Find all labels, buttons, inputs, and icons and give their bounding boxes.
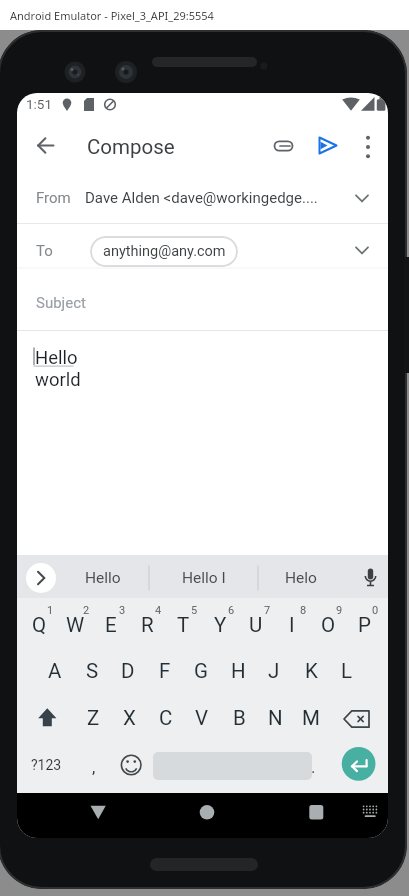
staticText: ?123 xyxy=(31,757,62,773)
staticText: anything@any.com xyxy=(103,243,226,260)
button[interactable]: Z xyxy=(76,703,110,733)
staticText: I xyxy=(289,613,295,637)
staticText: Helo xyxy=(285,569,317,587)
staticText: K xyxy=(305,659,318,683)
button[interactable]: W xyxy=(58,610,92,640)
button[interactable]: Y xyxy=(203,610,237,640)
staticText: S xyxy=(86,659,99,683)
button[interactable]: L xyxy=(330,656,364,686)
button[interactable]: anything@any.com xyxy=(90,236,238,267)
staticText: 9 xyxy=(336,604,343,617)
button[interactable] xyxy=(113,749,147,781)
staticText: N xyxy=(268,706,283,730)
button[interactable]: S xyxy=(75,656,109,686)
button[interactable]: , xyxy=(82,752,106,782)
button[interactable]: X xyxy=(112,703,146,733)
button[interactable]: P xyxy=(347,610,381,640)
button[interactable] xyxy=(17,269,388,329)
button[interactable]: U xyxy=(239,610,273,640)
button[interactable]: M xyxy=(294,703,328,733)
staticText: Z xyxy=(87,706,100,730)
staticText: Hello xyxy=(85,569,121,587)
button[interactable]: J xyxy=(257,656,291,686)
staticText: 2 xyxy=(83,604,90,617)
staticText: Hello world xyxy=(35,347,81,390)
staticText: B xyxy=(233,706,246,730)
staticText: Q xyxy=(32,613,47,637)
button[interactable]: N xyxy=(258,703,292,733)
button[interactable]: ?123 xyxy=(22,750,70,780)
button[interactable]: Hello I xyxy=(154,563,254,593)
button[interactable] xyxy=(27,701,63,733)
button[interactable] xyxy=(342,228,388,268)
button[interactable] xyxy=(355,561,387,595)
staticText: L xyxy=(341,659,353,683)
button[interactable] xyxy=(78,795,118,835)
staticText: J xyxy=(268,659,280,683)
button[interactable] xyxy=(307,125,347,165)
button[interactable]: Hello xyxy=(53,563,153,593)
staticText: 6 xyxy=(228,604,235,617)
button[interactable]: F xyxy=(148,656,182,686)
staticText: 5 xyxy=(191,604,198,617)
button[interactable]: A xyxy=(38,656,72,686)
staticText: Dave Alden <dave@workingedge.... xyxy=(85,189,318,207)
staticText: 8 xyxy=(300,604,307,617)
button[interactable]: V xyxy=(185,703,219,733)
button[interactable]: . xyxy=(301,752,325,782)
button[interactable]: O xyxy=(311,610,345,640)
staticText: T xyxy=(177,613,190,637)
staticText: 4 xyxy=(155,604,162,617)
staticText: , xyxy=(92,757,96,777)
button[interactable]: Q xyxy=(22,610,56,640)
staticText: M xyxy=(302,706,320,730)
button[interactable] xyxy=(187,795,227,835)
button[interactable] xyxy=(17,174,388,223)
button[interactable]: T xyxy=(166,610,200,640)
button[interactable] xyxy=(296,795,336,835)
staticText: Compose xyxy=(87,135,175,159)
staticText: R xyxy=(141,613,154,637)
staticText: F xyxy=(159,659,171,683)
staticText: E xyxy=(105,613,117,637)
staticText: 3 xyxy=(119,604,126,617)
staticText: From xyxy=(36,189,71,207)
staticText: P xyxy=(358,613,371,637)
staticText: To xyxy=(36,242,53,260)
button[interactable]: G xyxy=(184,656,218,686)
button[interactable]: K xyxy=(294,656,328,686)
staticText: W xyxy=(66,613,85,637)
staticText: V xyxy=(195,706,209,730)
button[interactable]: E xyxy=(94,610,128,640)
staticText: 0 xyxy=(372,604,379,617)
button[interactable]: H xyxy=(221,656,255,686)
button[interactable]: D xyxy=(111,656,145,686)
staticText: . xyxy=(311,757,316,777)
staticText: C xyxy=(159,706,173,730)
button[interactable]: B xyxy=(222,703,256,733)
button[interactable] xyxy=(341,747,376,781)
staticText: Hello I xyxy=(182,569,226,587)
staticText: H xyxy=(231,659,246,683)
staticText: Y xyxy=(214,613,227,637)
button[interactable] xyxy=(344,701,380,733)
staticText: Android Emulator - Pixel_3_API_29:5554 xyxy=(10,8,214,23)
button[interactable] xyxy=(21,561,57,595)
button[interactable] xyxy=(25,125,65,165)
staticText: O xyxy=(321,613,336,637)
staticText: Subject xyxy=(36,294,86,312)
staticText: G xyxy=(194,659,208,683)
button[interactable] xyxy=(350,125,386,165)
button[interactable]: Helo xyxy=(256,563,346,593)
button[interactable]: I xyxy=(275,610,309,640)
staticText: 1:51 xyxy=(26,96,53,112)
button[interactable]: C xyxy=(149,703,183,733)
staticText: X xyxy=(123,706,136,730)
staticText: U xyxy=(249,613,263,637)
button[interactable] xyxy=(357,795,385,835)
button[interactable] xyxy=(264,125,304,165)
staticText: 7 xyxy=(264,604,271,617)
staticText: A xyxy=(48,659,62,683)
button[interactable]: R xyxy=(130,610,164,640)
